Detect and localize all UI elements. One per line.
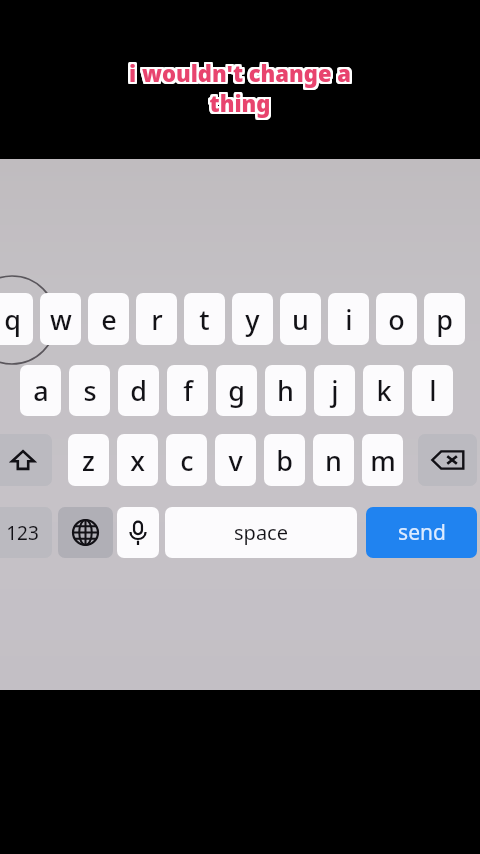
staticText: i wouldn't change a thing bbox=[0, 56, 480, 126]
staticText: e bbox=[101, 301, 117, 338]
button[interactable]: k bbox=[363, 365, 404, 416]
staticText: f bbox=[183, 372, 193, 409]
staticText: space bbox=[234, 519, 288, 546]
button[interactable]: j bbox=[314, 365, 355, 416]
staticText: i wouldn't change a thing bbox=[0, 59, 480, 129]
staticText: i wouldn't change a thing bbox=[0, 56, 478, 126]
staticText: j bbox=[331, 372, 339, 409]
button[interactable]: i bbox=[328, 293, 369, 345]
staticText: i wouldn't change a thing bbox=[1, 60, 480, 130]
staticText: i wouldn't change a thing bbox=[0, 56, 479, 126]
button[interactable]: Switch keyboard bbox=[58, 507, 113, 558]
button[interactable]: Shift bbox=[0, 434, 52, 486]
button[interactable]: c bbox=[166, 434, 207, 486]
staticText: i wouldn't change a thing bbox=[0, 59, 479, 129]
staticText: x bbox=[130, 442, 145, 479]
button[interactable]: f bbox=[167, 365, 208, 416]
button[interactable]: n bbox=[313, 434, 354, 486]
staticText: i wouldn't change a thing bbox=[0, 57, 478, 127]
staticText: d bbox=[130, 372, 147, 409]
button[interactable]: g bbox=[216, 365, 257, 416]
staticText: i wouldn't change a thing bbox=[0, 60, 480, 130]
staticText: i wouldn't change a thing bbox=[2, 58, 480, 128]
staticText: v bbox=[228, 442, 243, 479]
button[interactable]: r bbox=[136, 293, 177, 345]
button[interactable]: o bbox=[376, 293, 417, 345]
staticText: h bbox=[277, 372, 294, 409]
button[interactable]: send bbox=[366, 507, 477, 558]
staticText: i wouldn't change a thing bbox=[0, 59, 478, 129]
staticText: i wouldn't change a thing bbox=[0, 58, 479, 128]
staticText: i wouldn't change a thing bbox=[2, 59, 480, 129]
button[interactable]: Voice input bbox=[117, 507, 159, 558]
staticText: s bbox=[83, 372, 97, 409]
staticText: o bbox=[388, 301, 405, 338]
staticText: i wouldn't change a thing bbox=[0, 60, 479, 130]
button[interactable]: space bbox=[165, 507, 357, 558]
button[interactable]: y bbox=[232, 293, 273, 345]
staticText: i wouldn't change a thing bbox=[2, 56, 480, 126]
staticText: l bbox=[429, 372, 437, 409]
button[interactable]: m bbox=[362, 434, 403, 486]
button[interactable]: d bbox=[118, 365, 159, 416]
staticText: i wouldn't change a thing bbox=[0, 57, 480, 127]
staticText: 123 bbox=[6, 520, 39, 546]
staticText: i wouldn't change a thing bbox=[0, 57, 479, 127]
button[interactable]: x bbox=[117, 434, 158, 486]
staticText: send bbox=[398, 518, 446, 547]
button[interactable]: s bbox=[69, 365, 110, 416]
button[interactable]: w bbox=[40, 293, 81, 345]
button[interactable]: h bbox=[265, 365, 306, 416]
staticText: i wouldn't change a thing bbox=[1, 56, 480, 126]
staticText: i bbox=[345, 301, 353, 338]
staticText: k bbox=[376, 372, 392, 409]
staticText: w bbox=[50, 301, 72, 338]
staticText: i wouldn't change a thing bbox=[0, 60, 478, 130]
staticText: y bbox=[245, 301, 260, 338]
staticText: i wouldn't change a thing bbox=[1, 59, 480, 129]
staticText: g bbox=[228, 372, 245, 409]
staticText: z bbox=[82, 442, 95, 479]
button[interactable]: a bbox=[20, 365, 61, 416]
button[interactable]: e bbox=[88, 293, 129, 345]
staticText: m bbox=[370, 442, 396, 479]
staticText: t bbox=[199, 301, 210, 338]
staticText: q bbox=[4, 301, 21, 338]
staticText: n bbox=[325, 442, 342, 479]
staticText: i wouldn't change a thing bbox=[1, 57, 480, 127]
staticText: r bbox=[151, 301, 163, 338]
button[interactable]: l bbox=[412, 365, 453, 416]
button[interactable]: b bbox=[264, 434, 305, 486]
staticText: i wouldn't change a thing bbox=[2, 60, 480, 130]
staticText: p bbox=[436, 301, 453, 338]
button[interactable]: 123 bbox=[0, 507, 52, 558]
button[interactable]: z bbox=[68, 434, 109, 486]
button[interactable]: t bbox=[184, 293, 225, 345]
button[interactable]: q bbox=[0, 293, 33, 345]
staticText: i wouldn't change a thing bbox=[2, 57, 480, 127]
button[interactable]: Backspace bbox=[418, 434, 477, 486]
staticText: b bbox=[276, 442, 293, 479]
button[interactable]: u bbox=[280, 293, 321, 345]
button[interactable]: p bbox=[424, 293, 465, 345]
staticText: i wouldn't change a thing bbox=[0, 58, 480, 128]
staticText: i wouldn't change a thing bbox=[0, 58, 478, 128]
staticText: i wouldn't change a thing bbox=[1, 58, 480, 128]
staticText: a bbox=[33, 372, 49, 409]
staticText: c bbox=[180, 442, 194, 479]
button[interactable]: v bbox=[215, 434, 256, 486]
staticText: u bbox=[292, 301, 309, 338]
